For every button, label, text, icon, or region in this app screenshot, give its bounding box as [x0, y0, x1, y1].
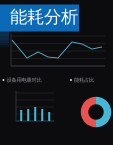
staticText: 设备用电量对比 [6, 77, 41, 83]
staticText: 能耗占比 [74, 77, 94, 83]
staticText: 能耗分析 [10, 6, 78, 28]
